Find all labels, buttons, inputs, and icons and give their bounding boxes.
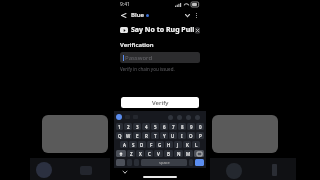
button[interactable]: 4 <box>142 123 150 130</box>
button[interactable]: U <box>169 132 177 139</box>
button[interactable]: D <box>138 141 146 148</box>
staticText: V <box>157 151 160 157</box>
button[interactable]: 2 <box>124 123 132 130</box>
button[interactable]: More <box>195 115 200 120</box>
staticText: H <box>167 142 171 148</box>
button[interactable]: Z <box>127 150 135 157</box>
button[interactable]: L <box>192 141 200 148</box>
button[interactable]: N <box>174 150 183 157</box>
staticText: B <box>167 151 170 157</box>
staticText: O <box>189 133 193 139</box>
staticText: Verify <box>152 99 169 107</box>
button[interactable]: Blue <box>131 11 149 19</box>
staticText: 2 <box>127 124 130 130</box>
button[interactable]: R <box>142 132 150 139</box>
button[interactable]: Symbols <box>116 159 125 166</box>
button[interactable]: V <box>154 150 163 157</box>
button[interactable]: E <box>133 132 141 139</box>
button[interactable]: 5 <box>151 123 159 130</box>
button[interactable]: 7 <box>169 123 177 130</box>
staticText: X <box>139 151 142 157</box>
button[interactable]: K <box>183 141 191 148</box>
button[interactable]: space <box>141 159 187 166</box>
staticText: Y <box>163 133 166 139</box>
button[interactable]: A <box>120 141 128 148</box>
button[interactable]: Clipboard <box>186 115 191 120</box>
button[interactable]: 6 <box>160 123 168 130</box>
button[interactable]: Backspace <box>194 150 204 157</box>
button[interactable]: H <box>165 141 173 148</box>
button[interactable]: More options <box>192 11 201 20</box>
staticText: F <box>150 142 153 148</box>
staticText: Blue <box>131 11 144 19</box>
button[interactable]: G <box>156 141 164 148</box>
staticText: D <box>140 142 144 148</box>
button[interactable]: P <box>196 132 204 139</box>
button[interactable]: Emoji <box>134 159 139 166</box>
button[interactable]: Period <box>189 159 193 166</box>
staticText: 3 <box>136 124 139 130</box>
button[interactable]: Enter <box>195 159 204 166</box>
staticText: Verify in chain you issued. <box>120 66 175 72</box>
staticText: 8 <box>181 124 184 130</box>
staticText: Password <box>125 54 153 62</box>
staticText: Q <box>118 133 122 139</box>
staticText: 5 <box>154 124 157 130</box>
staticText: M <box>186 151 191 157</box>
staticText: G <box>158 142 162 148</box>
staticText: R <box>145 133 148 139</box>
staticText: Say No to Rug Pull <box>131 25 195 35</box>
button[interactable]: 0 <box>196 123 204 130</box>
button[interactable]: Back <box>119 11 128 20</box>
button[interactable]: I <box>178 132 186 139</box>
button[interactable]: X <box>136 150 144 157</box>
button[interactable]: T <box>151 132 159 139</box>
button[interactable]: 8 <box>178 123 186 130</box>
button[interactable]: 3 <box>133 123 141 130</box>
button[interactable]: F <box>147 141 155 148</box>
staticText: 9 <box>190 124 193 130</box>
staticText: 1 <box>118 124 121 130</box>
button[interactable]: W <box>124 132 132 139</box>
button[interactable]: O <box>187 132 195 139</box>
staticText: N <box>177 151 181 157</box>
button[interactable]: Verify <box>121 97 199 108</box>
staticText: A <box>123 142 126 148</box>
button[interactable]: Password <box>120 52 200 63</box>
button[interactable]: Q <box>116 132 123 139</box>
staticText: T <box>154 133 157 139</box>
staticText: space <box>159 160 170 165</box>
staticText: 9:41 <box>120 1 130 8</box>
staticText: L <box>195 142 198 148</box>
staticText: 4 <box>145 124 148 130</box>
staticText: Verification <box>120 41 154 49</box>
staticText: U <box>171 133 175 139</box>
button[interactable]: Hide keyboard <box>122 169 128 175</box>
button[interactable]: M <box>184 150 193 157</box>
button[interactable]: Y <box>160 132 168 139</box>
button[interactable]: B <box>164 150 173 157</box>
staticText: J <box>177 142 179 148</box>
button[interactable]: Sticker <box>177 115 182 120</box>
button[interactable]: Expand <box>183 11 192 20</box>
staticText: 0 <box>199 124 202 130</box>
button[interactable]: 9 <box>187 123 195 130</box>
button[interactable]: Comma <box>127 159 132 166</box>
button[interactable]: 1 <box>116 123 123 130</box>
staticText: E <box>136 133 139 139</box>
button[interactable]: Settings <box>168 115 173 120</box>
staticText: W <box>126 133 131 139</box>
button[interactable]: C <box>145 150 153 157</box>
staticText: Z <box>130 151 133 157</box>
button[interactable]: J <box>174 141 182 148</box>
button[interactable]: S <box>129 141 137 148</box>
button[interactable]: Voice input <box>116 114 122 120</box>
staticText: 7 <box>172 124 175 130</box>
staticText: K <box>186 142 189 148</box>
staticText: S <box>132 142 135 148</box>
staticText: I <box>181 133 183 139</box>
button[interactable]: Close <box>195 27 200 34</box>
button[interactable]: Shift <box>116 150 126 157</box>
